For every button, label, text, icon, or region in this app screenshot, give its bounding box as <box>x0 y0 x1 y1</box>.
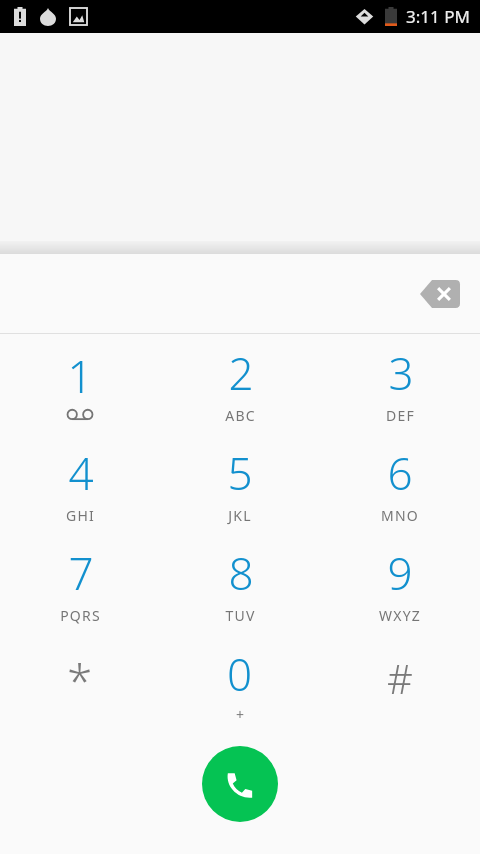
staticText: GHI <box>66 506 95 525</box>
staticText: + <box>236 705 245 724</box>
button[interactable]: 4 <box>0 434 160 534</box>
button[interactable]: * <box>0 634 160 734</box>
staticText: 2 <box>228 343 254 403</box>
button[interactable]: 1 <box>0 334 160 434</box>
button[interactable]: 7 <box>0 534 160 634</box>
staticText: # <box>387 651 413 705</box>
staticText: 0 <box>227 644 253 704</box>
staticText: PQRS <box>60 606 101 625</box>
staticText: 3:11 PM <box>406 5 470 28</box>
button[interactable]: # <box>320 634 480 734</box>
button[interactable]: 5 <box>160 434 320 534</box>
staticText: 3 <box>388 343 414 403</box>
staticText: 9 <box>387 543 413 603</box>
button[interactable]: 2 <box>160 334 320 434</box>
staticText: ABC <box>225 406 256 425</box>
button[interactable]: Backspace <box>412 270 468 318</box>
button[interactable]: 0 <box>160 634 320 734</box>
staticText: 6 <box>387 443 413 503</box>
button[interactable]: 6 <box>320 434 480 534</box>
button[interactable]: Call <box>202 746 278 822</box>
staticText: 1 <box>67 346 93 406</box>
button[interactable]: 9 <box>320 534 480 634</box>
button[interactable]: 8 <box>160 534 320 634</box>
staticText: MNO <box>381 506 419 525</box>
staticText: 8 <box>228 543 254 603</box>
staticText: * <box>67 649 93 712</box>
staticText: 5 <box>227 443 253 503</box>
staticText: 4 <box>68 443 94 503</box>
button[interactable]: 3 <box>320 334 480 434</box>
staticText: JKL <box>228 506 252 525</box>
staticText: 7 <box>68 543 94 603</box>
staticText: WXYZ <box>379 606 421 625</box>
staticText: DEF <box>386 406 415 425</box>
staticText: TUV <box>225 606 256 625</box>
